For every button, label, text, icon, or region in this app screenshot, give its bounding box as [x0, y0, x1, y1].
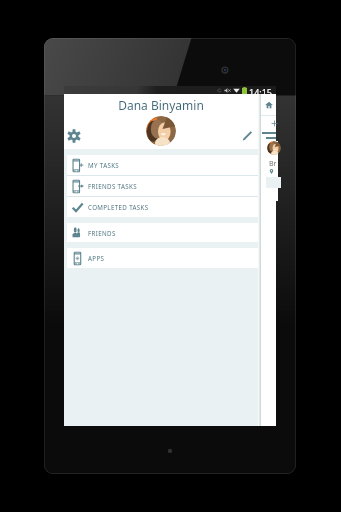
staticText: COMPLETED TASKS	[88, 203, 149, 211]
staticText: Br	[269, 159, 277, 169]
button[interactable]: FRIENDS TASKS	[67, 176, 258, 196]
button[interactable]: COMPLETED TASKS	[67, 197, 258, 217]
button[interactable]: Add	[261, 116, 276, 131]
staticText: APPS	[88, 254, 105, 262]
button[interactable]: Settings	[67, 129, 81, 143]
staticText: FRIENDS TASKS	[88, 182, 137, 190]
button[interactable]: Profile photo	[146, 116, 176, 146]
button[interactable]: Home	[261, 94, 276, 115]
staticText: MY TASKS	[88, 161, 120, 169]
staticText: FRIENDS	[88, 229, 116, 237]
staticText: 14:15	[249, 86, 273, 94]
button[interactable]: MY TASKS	[67, 155, 258, 175]
button[interactable]: Edit profile	[241, 129, 254, 142]
button[interactable]: FRIENDS	[67, 223, 258, 242]
staticText: Dana Binyamin	[118, 97, 204, 113]
button[interactable]: APPS	[67, 248, 258, 268]
